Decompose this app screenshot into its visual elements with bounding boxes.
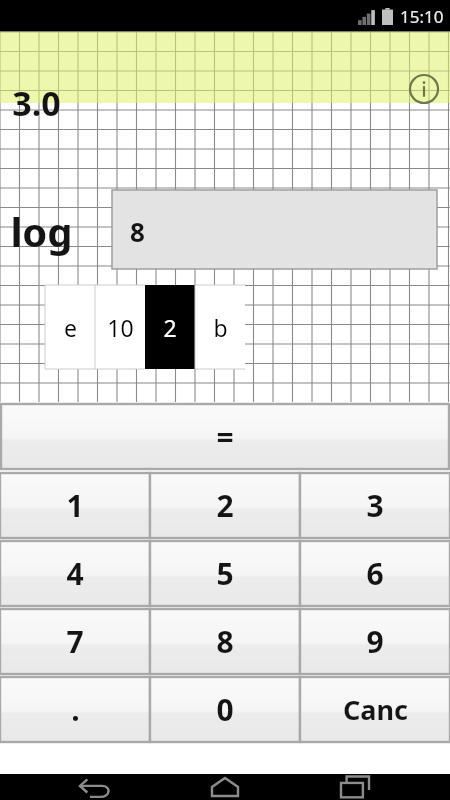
button[interactable]: 8 xyxy=(112,190,437,269)
button[interactable]: 1 xyxy=(0,473,150,538)
button[interactable]: b xyxy=(195,285,245,369)
staticText: 15:10 xyxy=(400,5,444,28)
staticText: Canc xyxy=(343,691,408,728)
staticText: e xyxy=(64,312,77,343)
staticText: 1 xyxy=(66,485,84,526)
button[interactable]: 2 xyxy=(145,285,195,369)
button[interactable]: Back xyxy=(60,774,130,800)
button[interactable]: 9 xyxy=(300,609,450,674)
staticText: 4 xyxy=(66,553,84,594)
staticText: 3 xyxy=(366,485,384,526)
button[interactable]: e xyxy=(45,285,95,369)
button[interactable]: 7 xyxy=(0,609,150,674)
button[interactable]: Canc xyxy=(300,677,450,742)
button[interactable]: Home xyxy=(190,774,260,800)
staticText: 6 xyxy=(366,553,384,594)
staticText: 3.0 xyxy=(12,80,61,126)
button[interactable]: . xyxy=(0,677,150,742)
staticText: = xyxy=(216,416,234,457)
button[interactable]: Recents xyxy=(320,774,390,800)
button[interactable]: Info xyxy=(407,72,441,106)
button[interactable]: 5 xyxy=(150,541,300,606)
staticText: 7 xyxy=(66,621,84,662)
staticText: 9 xyxy=(366,621,384,662)
staticText: b xyxy=(213,312,228,343)
button[interactable]: = xyxy=(1,404,449,469)
button[interactable]: 3 xyxy=(300,473,450,538)
button[interactable]: 8 xyxy=(150,609,300,674)
staticText: 10 xyxy=(107,312,134,343)
staticText: log xyxy=(10,204,73,258)
staticText: . xyxy=(71,689,80,730)
button[interactable]: 4 xyxy=(0,541,150,606)
button[interactable]: 10 xyxy=(95,285,145,369)
staticText: 8 xyxy=(216,621,234,662)
staticText: 2 xyxy=(216,485,234,526)
staticText: 5 xyxy=(216,553,234,594)
staticText: 8 xyxy=(130,214,145,249)
staticText: 2 xyxy=(163,312,177,343)
staticText: 0 xyxy=(216,689,234,730)
button[interactable]: 0 xyxy=(150,677,300,742)
button[interactable]: 6 xyxy=(300,541,450,606)
button[interactable]: 2 xyxy=(150,473,300,538)
